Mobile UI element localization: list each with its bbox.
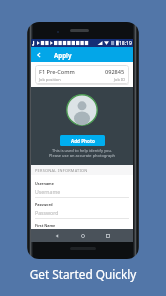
staticText: 092845 [105, 68, 125, 76]
staticText: Apply [54, 51, 72, 59]
button[interactable]: Add Photo [60, 135, 105, 146]
staticText: Password [35, 209, 59, 216]
staticText: PERSONAL INFORMATION [35, 168, 88, 173]
staticText: Add Photo [71, 138, 95, 144]
button[interactable]: F1 Pre-Comm [35, 65, 129, 84]
staticText: 18:19 [119, 40, 132, 47]
button[interactable]: Back [47, 229, 66, 242]
staticText: Username [35, 181, 54, 186]
staticText: Job position [39, 77, 61, 82]
staticText: First Name [35, 223, 56, 228]
button[interactable]: Username [35, 177, 129, 198]
staticText: Job ID [114, 77, 125, 82]
button[interactable]: Recent apps [98, 229, 117, 242]
button[interactable]: Password [35, 198, 129, 219]
staticText: Username [35, 188, 61, 195]
button[interactable]: Home [73, 229, 92, 242]
staticText: F1 Pre-Comm [39, 68, 75, 76]
staticText: This is used to help identify you. Pleas… [31, 148, 133, 158]
staticText: Password [35, 202, 53, 207]
staticText: Get Started Quickly [0, 266, 166, 282]
button[interactable]: Back [31, 47, 46, 62]
